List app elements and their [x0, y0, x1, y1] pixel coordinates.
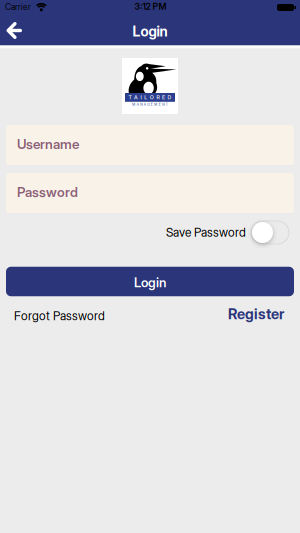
staticText: Forgot Password [14, 309, 105, 323]
staticText: Login [132, 23, 167, 40]
staticText: MANAGEMENT [132, 102, 168, 106]
staticText: Register [228, 305, 284, 323]
staticText: Username [17, 136, 79, 152]
staticText: TAILORED [128, 94, 172, 101]
staticText: Password [17, 184, 78, 200]
staticText: Login [134, 275, 166, 290]
staticText: Carrier [5, 2, 31, 12]
staticText: Save Password [166, 225, 246, 240]
staticText: 3:12 PM [134, 1, 166, 12]
